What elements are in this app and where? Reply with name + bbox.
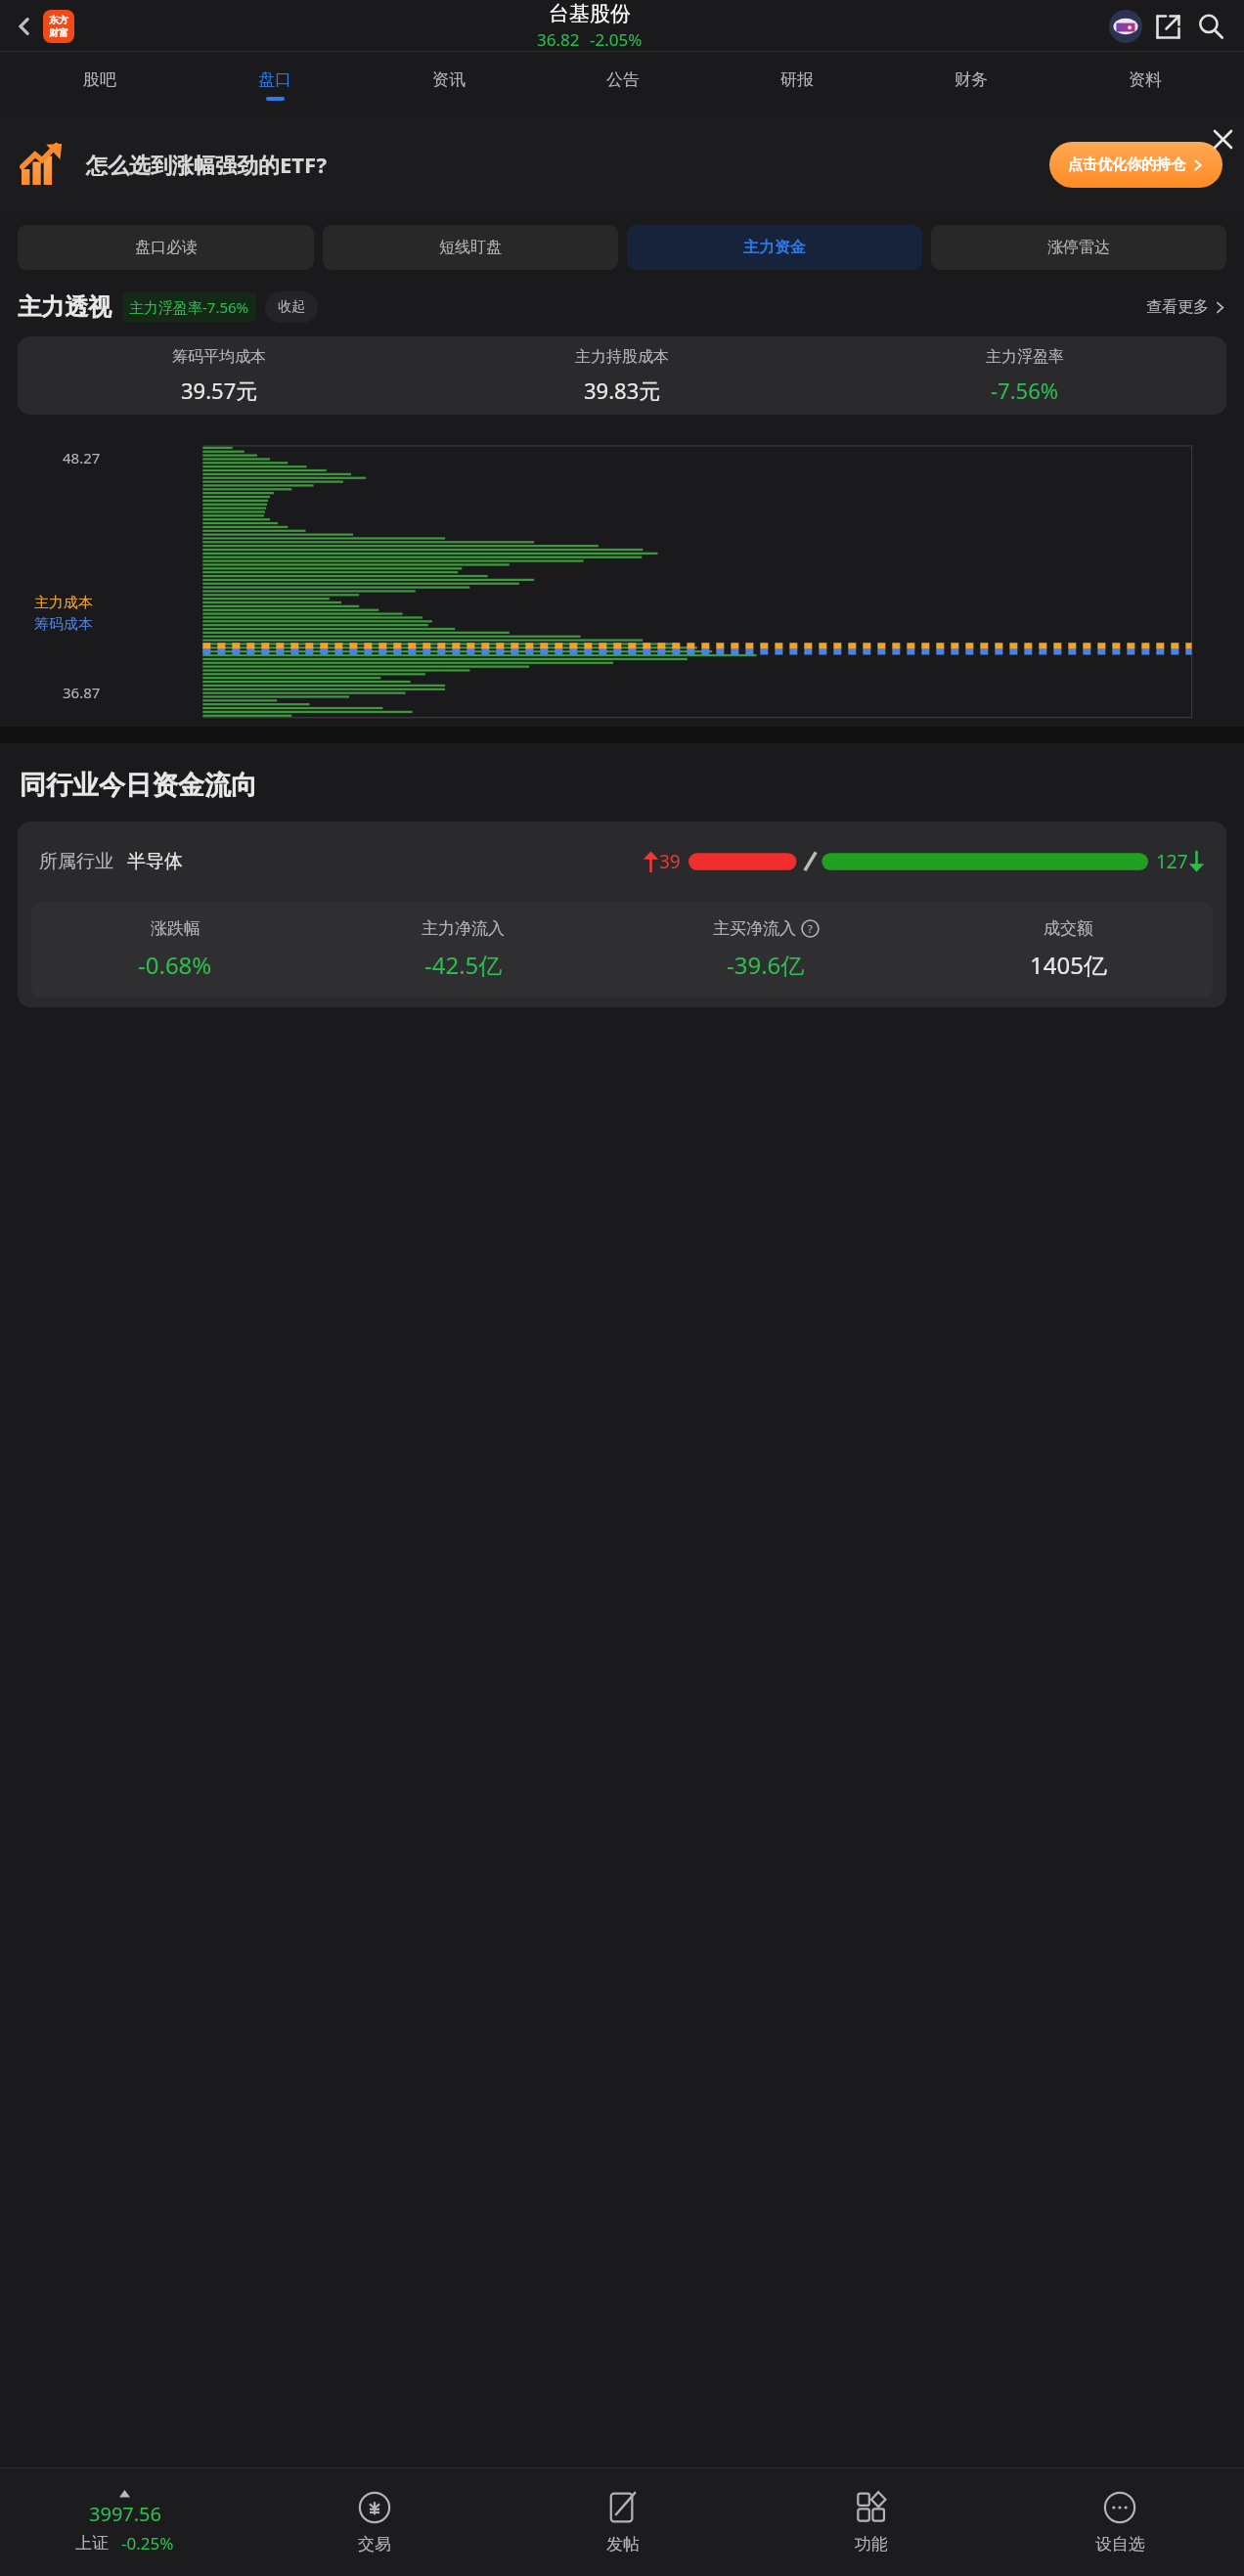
staticText: -2.05%	[590, 28, 643, 51]
staticText: 所属行业	[39, 850, 113, 873]
staticText: 怎么选到涨幅强劲的ETF?	[86, 150, 328, 179]
staticText: ?	[808, 921, 813, 936]
staticText: 127	[1156, 849, 1188, 874]
button[interactable]: 资讯	[362, 52, 536, 117]
staticText: 上证	[75, 2533, 109, 2554]
staticText: 盘口必读	[135, 238, 198, 257]
staticText: 点击优化你的持仓	[1068, 155, 1185, 174]
staticText: -42.5亿	[424, 949, 503, 981]
staticText: -39.6亿	[727, 949, 805, 981]
staticText: 同行业今日资金流向	[20, 769, 257, 802]
staticText: 39	[659, 849, 681, 874]
staticText: 36.87	[63, 683, 101, 702]
staticText: 盘口	[258, 69, 291, 90]
button[interactable]: 所属行业	[18, 822, 1226, 1007]
button[interactable]: 盘口必读	[18, 225, 314, 270]
staticText: 主力浮盈率	[986, 347, 1064, 367]
button[interactable]: Assistant	[1105, 6, 1146, 47]
staticText: 短线盯盘	[439, 238, 502, 257]
staticText: 财富	[49, 26, 68, 39]
staticText: 主力持股成本	[575, 347, 669, 367]
staticText: 资讯	[432, 69, 466, 90]
button[interactable]: Share	[1146, 5, 1189, 48]
button[interactable]: 研报	[710, 52, 884, 117]
button[interactable]: 资料	[1058, 52, 1232, 117]
staticText: 成交额	[1044, 918, 1093, 939]
button[interactable]: 收起	[265, 291, 318, 323]
staticText: 主买净流入	[713, 918, 796, 939]
staticText: 主力净流入	[422, 918, 505, 939]
staticText: 涨停雷达	[1047, 238, 1110, 257]
staticText: 涨跌幅	[151, 918, 200, 939]
button[interactable]: 点击优化你的持仓	[1049, 142, 1222, 188]
button[interactable]: 主力资金	[627, 225, 922, 270]
staticText: 3997.56	[89, 2501, 161, 2527]
button[interactable]: 设自选	[996, 2468, 1244, 2576]
staticText: 设自选	[1095, 2534, 1145, 2554]
staticText: 主力成本	[34, 594, 93, 612]
button[interactable]: 盘口	[187, 52, 362, 117]
button[interactable]: 股吧	[12, 52, 187, 117]
button[interactable]: 发帖	[499, 2468, 747, 2576]
staticText: 研报	[780, 69, 814, 90]
staticText: 筹码平均成本	[172, 347, 266, 367]
staticText: 48.27	[63, 448, 101, 467]
button[interactable]: 财务	[884, 52, 1058, 117]
button[interactable]: 筹码平均成本	[18, 336, 1226, 415]
button[interactable]: Search	[1189, 5, 1232, 48]
staticText: 36.82	[537, 28, 580, 51]
staticText: 发帖	[606, 2534, 640, 2554]
staticText: 39.57元	[181, 376, 258, 405]
button[interactable]: 公告	[536, 52, 710, 117]
button[interactable]: 交易	[249, 2468, 499, 2576]
staticText: 股吧	[83, 69, 116, 90]
staticText: 主力资金	[743, 238, 806, 257]
staticText: -0.68%	[138, 949, 212, 981]
staticText: 查看更多	[1146, 297, 1209, 317]
button[interactable]: 查看更多	[1146, 297, 1226, 317]
button[interactable]: 3997.56	[0, 2468, 249, 2576]
button[interactable]: 涨停雷达	[931, 225, 1226, 270]
staticText: 台基股份	[549, 1, 631, 26]
staticText: 1405亿	[1030, 949, 1107, 981]
button[interactable]: 功能	[747, 2468, 996, 2576]
button[interactable]: Back	[8, 10, 41, 43]
staticText: 半导体	[127, 850, 183, 873]
button[interactable]: Info	[801, 919, 820, 938]
button[interactable]: 短线盯盘	[323, 225, 618, 270]
staticText: -7.56%	[991, 376, 1059, 405]
staticText: 主力浮盈率-7.56%	[129, 297, 249, 317]
staticText: 公告	[606, 69, 640, 90]
staticText: 财务	[955, 69, 988, 90]
staticText: 筹码成本	[34, 615, 93, 634]
button[interactable]: Close	[1201, 117, 1244, 160]
staticText: 东方	[49, 14, 68, 26]
staticText: 收起	[278, 298, 305, 316]
staticText: 功能	[855, 2534, 888, 2554]
button[interactable]: East Money	[43, 10, 74, 43]
staticText: -0.25%	[121, 2532, 174, 2554]
staticText: 主力透视	[18, 292, 111, 322]
staticText: 39.83元	[584, 376, 661, 405]
staticText: 资料	[1129, 69, 1162, 90]
staticText: 交易	[358, 2534, 391, 2554]
